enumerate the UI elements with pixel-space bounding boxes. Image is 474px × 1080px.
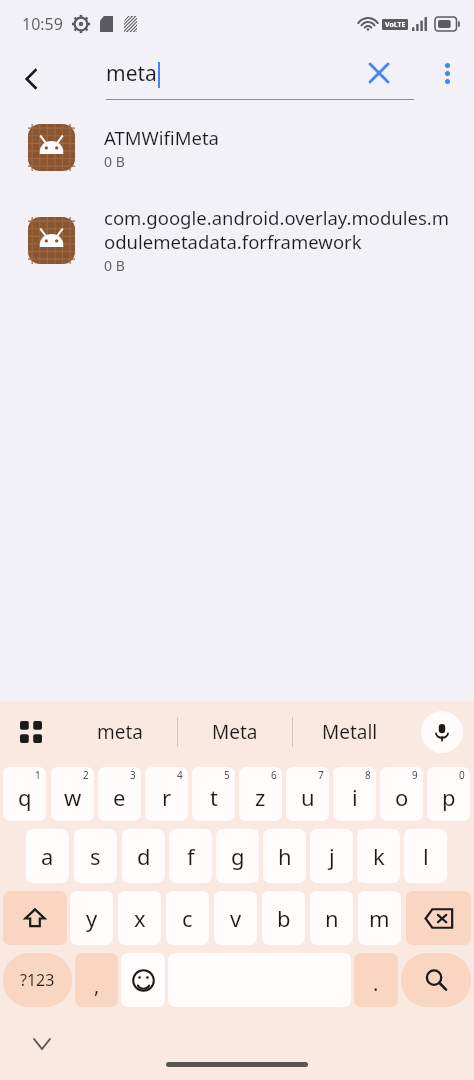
button[interactable]: Delete (406, 891, 471, 945)
button[interactable]: b (262, 891, 305, 945)
button[interactable]: meta (62, 701, 177, 763)
staticText: h (278, 841, 292, 871)
button[interactable]: t (192, 767, 235, 821)
button[interactable]: Shift (3, 891, 67, 945)
staticText: s (90, 841, 101, 871)
button[interactable]: z (239, 767, 282, 821)
button[interactable]: y (70, 891, 113, 945)
staticText: , (94, 972, 100, 999)
staticText: q (18, 782, 32, 812)
staticText: z (255, 782, 266, 812)
staticText: meta (97, 719, 143, 745)
staticText: a (41, 841, 54, 871)
staticText: 2 (83, 768, 89, 782)
staticText: ?123 (20, 969, 55, 991)
button[interactable]: d (122, 829, 165, 883)
staticText: . (373, 970, 379, 997)
staticText: 8 (365, 768, 371, 782)
staticText: Meta (212, 719, 258, 745)
button[interactable]: e (98, 767, 141, 821)
button[interactable]: u (286, 767, 329, 821)
button[interactable]: m (358, 891, 401, 945)
staticText: com.google.android.overlay.modules.modul… (104, 205, 460, 254)
staticText: j (329, 841, 335, 871)
button[interactable]: com.google.android.overlay.modules.modul… (0, 199, 474, 281)
staticText: n (325, 903, 339, 933)
staticText: 0 B (104, 256, 125, 275)
button[interactable]: j (310, 829, 353, 883)
button[interactable]: More options (424, 50, 470, 96)
button[interactable]: x (118, 891, 161, 945)
staticText: 7 (318, 768, 324, 782)
button[interactable]: Back (8, 55, 56, 103)
button[interactable]: . (354, 953, 398, 1007)
staticText: ATMWifiMeta (104, 125, 219, 150)
button[interactable]: c (166, 891, 209, 945)
staticText: 3 (130, 768, 136, 782)
button[interactable]: w (51, 767, 94, 821)
button[interactable]: i (333, 767, 376, 821)
staticText: f (187, 841, 195, 871)
staticText: meta (106, 59, 157, 88)
staticText: 10:59 (22, 13, 63, 35)
button[interactable]: n (310, 891, 353, 945)
staticText: o (395, 782, 409, 812)
button[interactable]: h (263, 829, 306, 883)
staticText: 1 (35, 768, 41, 782)
staticText: l (423, 841, 429, 871)
button[interactable]: p (427, 767, 470, 821)
button[interactable]: g (216, 829, 259, 883)
button[interactable]: ?123 (3, 953, 72, 1007)
button[interactable]: q (3, 767, 46, 821)
button[interactable]: Hide keyboard (22, 1024, 62, 1064)
button[interactable]: v (214, 891, 257, 945)
button[interactable]: Metall (293, 701, 407, 763)
staticText: m (369, 903, 390, 933)
staticText: c (182, 903, 193, 933)
staticText: v (230, 903, 242, 933)
staticText: Metall (322, 719, 378, 745)
button[interactable]: r (145, 767, 188, 821)
staticText: x (134, 903, 146, 933)
staticText: 4 (177, 768, 183, 782)
staticText: r (162, 782, 172, 812)
button[interactable]: s (74, 829, 117, 883)
button[interactable]: Emoji (121, 953, 165, 1007)
button[interactable]: o (380, 767, 423, 821)
staticText: VoLTE (385, 20, 406, 30)
button[interactable]: , (75, 953, 118, 1007)
staticText: p (442, 782, 456, 812)
button[interactable]: Toolbar (8, 709, 54, 755)
button[interactable]: ATMWifiMeta (0, 118, 474, 177)
button[interactable]: Meta (178, 701, 292, 763)
staticText: b (277, 903, 291, 933)
button[interactable]: f (169, 829, 212, 883)
staticText: 5 (224, 768, 230, 782)
staticText: g (231, 841, 245, 871)
staticText: k (373, 841, 385, 871)
staticText: e (113, 782, 126, 812)
button[interactable]: l (404, 829, 447, 883)
staticText: t (210, 782, 218, 812)
staticText: 0 (459, 768, 465, 782)
staticText: 9 (412, 768, 418, 782)
button[interactable]: Clear search (356, 50, 402, 96)
button[interactable]: Search (401, 953, 471, 1007)
staticText: y (86, 903, 98, 933)
button[interactable]: Voice input (421, 711, 463, 753)
button[interactable]: a (26, 829, 69, 883)
staticText: w (64, 782, 82, 812)
button[interactable]: k (357, 829, 400, 883)
staticText: 0 B (104, 152, 125, 171)
staticText: u (301, 782, 315, 812)
staticText: d (137, 841, 151, 871)
staticText: i (352, 782, 358, 812)
staticText: 6 (271, 768, 277, 782)
